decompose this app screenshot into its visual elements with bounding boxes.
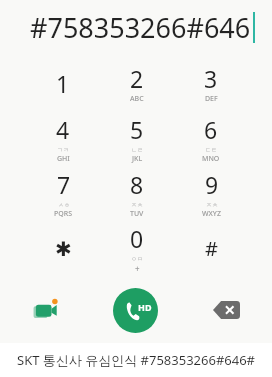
button[interactable]: Video call [0,276,90,344]
staticText: ㅈㅊ [206,201,218,209]
staticText: PQRS [54,209,73,219]
button[interactable]: Call [113,288,158,333]
staticText: ㅅㅎ [58,201,70,209]
staticText: ㅈㅊ [131,201,143,209]
button[interactable]: ✱ [26,221,100,276]
button[interactable]: 9 [174,166,248,221]
button[interactable]: #758353266#646 [0,0,272,54]
button[interactable]: Backspace [181,276,272,344]
staticText: ✱ [55,237,72,260]
staticText: DEF [205,94,218,104]
button[interactable]: 1 [26,56,100,111]
staticText: 1 [56,68,70,99]
button[interactable]: 2 [100,56,174,111]
staticText: ㄴㄹ [131,146,143,154]
staticText: MNO [202,154,220,164]
staticText: 2 [130,63,144,94]
button[interactable]: 4 [26,111,100,166]
staticText: 9 [205,169,219,200]
button[interactable]: 3 [174,56,248,111]
staticText: TUV [130,209,144,219]
staticText: 8 [130,169,144,200]
staticText: # [205,235,218,262]
staticText: + [135,263,140,274]
staticText: 3 [204,63,218,94]
staticText: 7 [57,169,71,200]
button[interactable]: 6 [174,111,248,166]
staticText: 4 [56,114,70,145]
staticText: 5 [130,114,144,145]
button[interactable]: 7 [26,166,100,221]
staticText: WXYZ [202,209,221,219]
staticText: ABC [130,94,144,104]
staticText: ㄷㅌ [205,146,217,154]
button[interactable]: 8 [100,166,174,221]
staticText: 0 [130,223,144,254]
button[interactable]: # [174,221,248,276]
staticText: ㄱㅋ [57,146,69,154]
staticText: 6 [204,114,218,145]
staticText: HD [138,301,152,313]
button[interactable]: 0 [100,221,174,276]
staticText: JKL [132,154,143,164]
button[interactable]: 5 [100,111,174,166]
staticText: GHI [57,154,70,164]
staticText: ㅇㅁ [131,255,143,263]
staticText: SKT 통신사 유심인식 #758353266#646# [17,351,255,369]
staticText: #758353266#646 [30,9,251,46]
